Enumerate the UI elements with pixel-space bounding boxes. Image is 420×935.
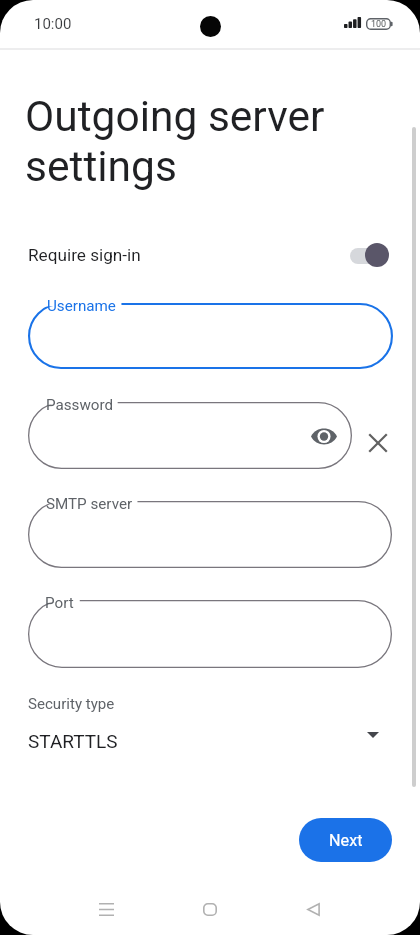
button[interactable]: Require sign-in toggle [344,237,396,273]
button[interactable]: SMTP server [28,501,392,568]
button[interactable]: Recents [70,881,142,935]
staticText: Password [46,396,114,414]
button[interactable]: Show password [304,416,344,456]
button[interactable]: Security type [0,685,420,761]
staticText: Port [45,594,74,612]
staticText: Username [47,297,116,315]
button[interactable]: Back [276,881,348,935]
button[interactable]: Home [173,881,245,935]
staticText: 100 [371,19,387,30]
staticText: Next [329,831,363,850]
button[interactable]: Clear password [358,423,398,463]
staticText: Require sign-in [28,245,141,265]
staticText: Outgoing server settings [25,92,325,192]
staticText: 10:00 [34,15,72,33]
staticText: Security type [28,695,115,713]
button[interactable]: Require sign-in [0,227,420,283]
button[interactable]: Username [28,303,393,369]
button[interactable]: Next [299,818,392,862]
button[interactable]: Password [28,402,352,469]
staticText: SMTP server [46,495,133,513]
button[interactable]: Port [28,600,392,668]
staticText: STARTTLS [28,730,118,752]
